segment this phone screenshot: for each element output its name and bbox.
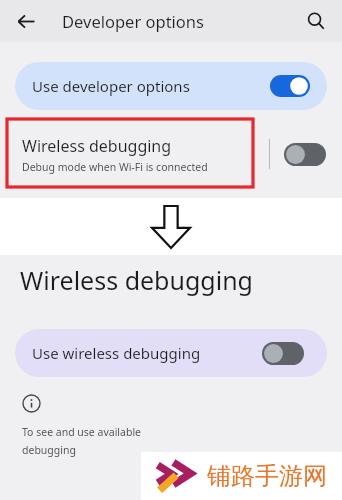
- staticText: 铺路手游网: [207, 461, 327, 491]
- staticText: Wireless debugging: [20, 263, 253, 297]
- staticText: Debug mode when Wi-Fi is connected: [22, 160, 208, 174]
- button[interactable]: Use developer options: [15, 62, 327, 110]
- button[interactable]: Use wireless debugging: [15, 329, 327, 377]
- staticText: Wireless debugging: [22, 135, 172, 157]
- staticText: To see and use available: [22, 425, 142, 439]
- staticText: Use wireless debugging: [32, 343, 262, 363]
- staticText: Developer options: [62, 10, 204, 32]
- button[interactable]: Back: [10, 5, 42, 37]
- staticText: Use developer options: [32, 76, 270, 96]
- button[interactable]: Wireless debugging: [0, 110, 342, 198]
- staticText: debugging: [22, 443, 76, 457]
- button[interactable]: Search: [300, 5, 332, 37]
